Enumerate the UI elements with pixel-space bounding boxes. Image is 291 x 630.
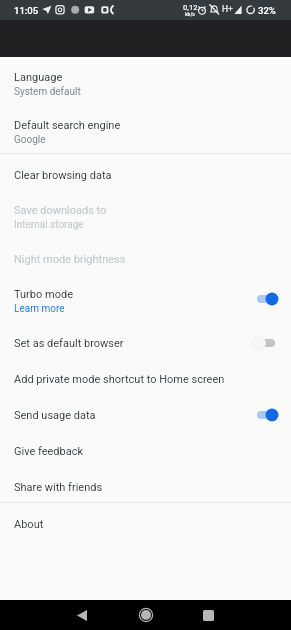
staticText: Turbo mode [14,288,73,301]
button[interactable]: Back [64,600,100,630]
button[interactable]: About [0,503,291,539]
button[interactable]: Home [128,600,164,630]
staticText: Save downloads to [14,204,107,217]
staticText: Night mode brightness [14,253,126,266]
staticText: 11:05 [14,5,39,16]
staticText: Google [14,134,46,146]
button[interactable]: Recents [190,600,226,630]
button[interactable]: Save downloads to [0,190,291,238]
button[interactable]: Default search engine [0,105,291,153]
staticText: Learn more [14,303,65,315]
staticText: 0,12 [183,3,198,12]
button[interactable]: Turbo mode [0,274,291,322]
staticText: System default [14,86,81,98]
staticText: 32% [258,5,276,16]
staticText: Send usage data [14,409,96,422]
staticText: Clear browsing data [14,169,112,182]
staticText: Set as default browser [14,337,124,350]
button[interactable]: Switch on [251,405,281,425]
staticText: About [14,518,44,531]
staticText: Share with friends [14,481,103,494]
staticText: kb/s [185,11,195,17]
staticText: Language [14,71,63,84]
button[interactable]: Clear browsing data [0,154,291,190]
staticText: Add private mode shortcut to Home screen [14,373,225,386]
button[interactable]: Switch on [251,289,281,309]
staticText: Default search engine [14,119,121,132]
staticText: Internal storage [14,219,84,231]
button[interactable]: Add private mode shortcut to Home screen [0,358,291,394]
button[interactable]: Set as default browser [0,322,291,358]
button[interactable]: Language [0,57,291,105]
button[interactable]: Switch off [251,333,281,353]
button[interactable]: Share with friends [0,466,291,502]
button[interactable]: Night mode brightness [0,238,291,274]
button[interactable]: Give feedback [0,430,291,466]
button[interactable]: Send usage data [0,394,291,430]
staticText: H+ [222,4,233,14]
staticText: Give feedback [14,445,84,458]
